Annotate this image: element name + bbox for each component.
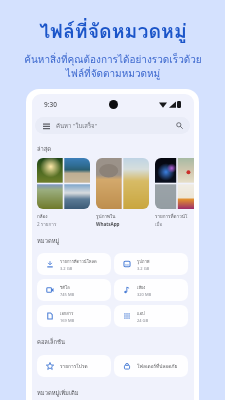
staticText: กล้อง (37, 213, 48, 220)
button[interactable]: เสียง (114, 279, 188, 301)
staticText: รูปภาพ (137, 258, 150, 265)
staticText: ไฟล์ที่จัดหมวดหมู่ (39, 16, 187, 47)
staticText: 2 รายการ (37, 221, 57, 228)
other: Menu (43, 123, 50, 129)
button[interactable]: วิดีโอ (37, 279, 111, 301)
staticText: ค้นหา "ใบเสร็จ" (56, 121, 98, 131)
staticText: รายการที่ดาวน์โหลด (60, 258, 97, 265)
staticText: WhatsApp (96, 221, 120, 227)
staticText: ล่าสุด (37, 144, 52, 153)
staticText: 745 MB (60, 292, 75, 297)
staticText: 169 MB (60, 318, 75, 323)
button[interactable]: กล้อง (37, 158, 90, 228)
button[interactable]: รายการที่ดาวน์โหลด (37, 253, 111, 275)
staticText: 320 MB (137, 292, 152, 297)
staticText: เมื่อ (155, 221, 163, 228)
staticText: แอป (137, 310, 145, 317)
button[interactable]: เอกสาร (37, 305, 111, 327)
staticText: โฟลเดอร์ที่ปลอดภัย (137, 362, 178, 370)
button[interactable]: Menu (35, 117, 190, 134)
button[interactable]: โฟลเดอร์ที่ปลอดภัย (114, 355, 188, 377)
button[interactable]: รูปภาพ (114, 253, 188, 275)
staticText: 3.2 GB (137, 266, 150, 271)
staticText: คอลเล็กชัน (37, 337, 65, 346)
staticText: 3.2 GB (60, 266, 73, 271)
staticText: รูปภาพใน (96, 213, 116, 220)
staticText: รายการที่ดาวน์โ (155, 213, 188, 220)
button[interactable]: แอป (114, 305, 188, 327)
staticText: เอกสาร (60, 310, 74, 317)
staticText: ค้นหาสิ่งที่คุณต้องการได้อย่างรวดเร็วด้ว… (24, 52, 202, 81)
staticText: 24 GB (137, 318, 149, 323)
staticText: เสียง (137, 284, 146, 291)
other: Search (176, 122, 183, 129)
staticText: รายการโปรด (60, 362, 88, 370)
button[interactable]: รายการที่ดาวน์โ (155, 158, 194, 228)
staticText: หมวดหมู่เพิ่มเติม (37, 388, 79, 397)
button[interactable]: รูปภาพใน (96, 158, 149, 227)
staticText: หมวดหมู่ (37, 236, 60, 245)
staticText: 9:30 (44, 100, 57, 109)
button[interactable]: รายการโปรด (37, 355, 111, 377)
staticText: วิดีโอ (60, 284, 70, 291)
